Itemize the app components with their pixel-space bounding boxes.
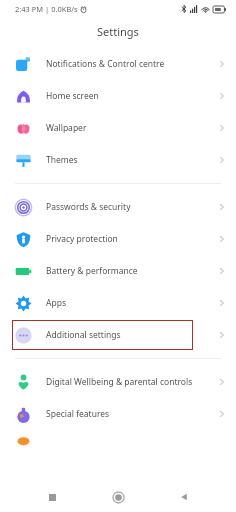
button[interactable]: Home <box>104 483 132 511</box>
staticText: Themes <box>46 154 78 166</box>
staticText: Additional settings <box>46 329 121 341</box>
button[interactable]: Special features <box>0 398 236 430</box>
button[interactable]: Home screen <box>0 80 236 112</box>
button[interactable]: Passwords & security <box>0 191 236 223</box>
button[interactable]: Themes <box>0 144 236 176</box>
button[interactable]: Privacy protection <box>0 223 236 255</box>
button[interactable]: Digital Wellbeing & parental controls <box>0 366 236 398</box>
staticText: Apps <box>46 297 66 309</box>
staticText: Wallpaper <box>46 122 87 134</box>
staticText: Notifications & Control centre <box>46 58 165 70</box>
button[interactable]: Notifications & Control centre <box>0 48 236 80</box>
staticText: Digital Wellbeing & parental controls <box>46 376 193 388</box>
button[interactable] <box>0 430 236 456</box>
button[interactable]: Apps <box>0 287 236 319</box>
staticText: Battery & performance <box>46 265 138 277</box>
staticText: Special features <box>46 408 110 420</box>
staticText: Settings <box>97 24 139 39</box>
button[interactable]: Additional settings <box>0 319 236 351</box>
staticText: 2:43 PM | 0.0KB/s <box>15 4 78 14</box>
button[interactable]: Recent apps <box>38 483 66 511</box>
staticText: Privacy protection <box>46 233 118 245</box>
button[interactable]: Battery & performance <box>0 255 236 287</box>
button[interactable]: Back <box>170 483 198 511</box>
staticText: Home screen <box>46 90 99 102</box>
button[interactable]: Wallpaper <box>0 112 236 144</box>
staticText: Passwords & security <box>46 201 131 213</box>
